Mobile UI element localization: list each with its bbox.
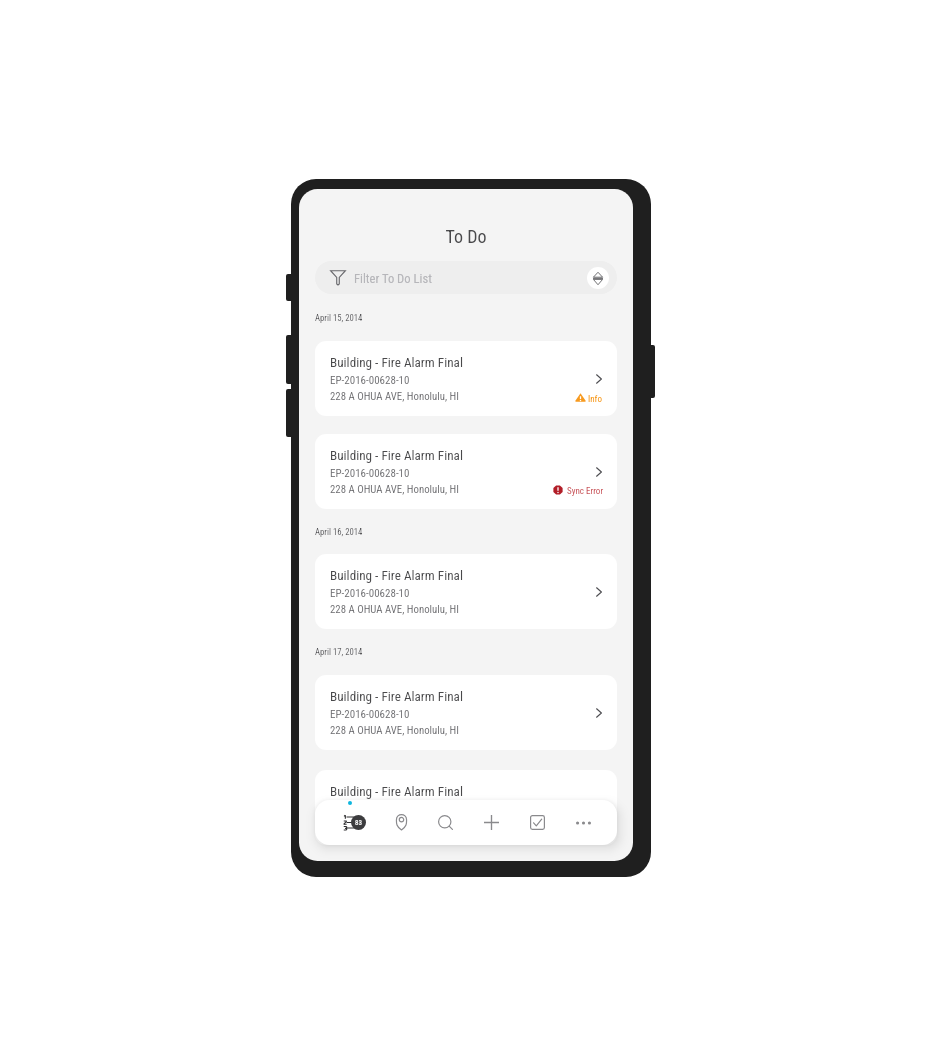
staticText: April 17, 2014: [315, 647, 363, 657]
staticText: Sync Error: [567, 486, 604, 497]
staticText: EP-2016-00628-10: [330, 587, 410, 600]
button[interactable]: Sort: [587, 267, 609, 289]
staticText: 228 A OHUA AVE, Honolulu, HI: [330, 819, 459, 832]
button[interactable]: Map: [388, 800, 415, 845]
staticText: Building - Fire Alarm Final: [330, 568, 463, 583]
staticText: EP-2016-00628-10: [330, 374, 410, 387]
staticText: EP-2016-00628-10: [330, 803, 410, 816]
staticText: Building - Fire Alarm Final: [330, 448, 463, 463]
staticText: 228 A OHUA AVE, Honolulu, HI: [330, 483, 459, 496]
staticText: Filter To Do List: [354, 271, 432, 286]
staticText: 228 A OHUA AVE, Honolulu, HI: [330, 724, 459, 737]
staticText: 83: [355, 819, 362, 827]
button[interactable]: To Do list: [331, 800, 379, 845]
staticText: EP-2016-00628-10: [330, 708, 410, 721]
staticText: To Do: [299, 226, 633, 247]
button[interactable]: Building - Fire Alarm Final: [315, 770, 617, 845]
staticText: Building - Fire Alarm Final: [330, 689, 463, 704]
button[interactable]: Building - Fire Alarm Final: [315, 554, 617, 629]
button[interactable]: Add: [476, 800, 507, 845]
staticText: 228 A OHUA AVE, Honolulu, HI: [330, 603, 459, 616]
button[interactable]: Filter To Do List: [315, 261, 617, 294]
staticText: Building - Fire Alarm Final: [330, 355, 463, 370]
button[interactable]: Search: [430, 800, 461, 845]
button[interactable]: Building - Fire Alarm Final: [315, 675, 617, 750]
button[interactable]: Building - Fire Alarm Final: [315, 341, 617, 416]
button[interactable]: Building - Fire Alarm Final: [315, 434, 617, 509]
staticText: 228 A OHUA AVE, Honolulu, HI: [330, 390, 459, 403]
staticText: April 15, 2014: [315, 313, 363, 323]
staticText: EP-2016-00628-10: [330, 467, 410, 480]
button[interactable]: Inspections: [522, 800, 553, 845]
staticText: Info: [588, 394, 602, 405]
button[interactable]: More: [568, 800, 599, 845]
staticText: April 16, 2014: [315, 527, 363, 537]
staticText: Building - Fire Alarm Final: [330, 784, 463, 799]
